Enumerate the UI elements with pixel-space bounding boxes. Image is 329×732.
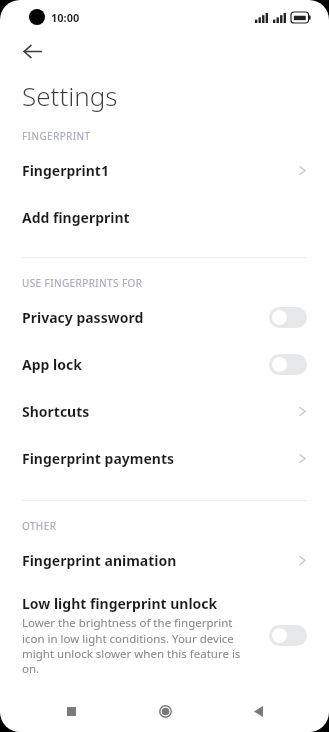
staticText: 10:00 bbox=[51, 10, 80, 25]
staticText: USE FINGERPRINTS FOR bbox=[22, 276, 143, 290]
button[interactable]: Low light fingerprint unlock bbox=[0, 584, 329, 686]
staticText: Add fingerprint bbox=[22, 208, 307, 227]
staticText: Fingerprint1 bbox=[22, 161, 298, 180]
button[interactable]: Toggle bbox=[269, 354, 307, 375]
button[interactable]: Fingerprint animation bbox=[0, 537, 329, 584]
button[interactable]: Fingerprint1 bbox=[0, 147, 329, 194]
staticText: FINGERPRINT bbox=[22, 129, 91, 143]
button[interactable]: Home bbox=[142, 690, 188, 732]
staticText: Lower the brightness of the fingerprint … bbox=[22, 615, 257, 676]
button[interactable]: Toggle bbox=[269, 307, 307, 328]
staticText: Shortcuts bbox=[22, 402, 298, 421]
button[interactable]: Fingerprint payments bbox=[0, 435, 329, 482]
staticText: Privacy password bbox=[22, 308, 269, 327]
button[interactable]: Add fingerprint bbox=[0, 194, 329, 241]
staticText: OTHER bbox=[22, 519, 57, 533]
button[interactable]: Privacy password bbox=[0, 294, 329, 341]
staticText: App lock bbox=[22, 355, 269, 374]
button[interactable]: Shortcuts bbox=[0, 388, 329, 435]
staticText: Fingerprint payments bbox=[22, 449, 298, 468]
staticText: Low light fingerprint unlock bbox=[22, 594, 218, 613]
button[interactable]: Back bbox=[235, 690, 281, 732]
staticText: Settings bbox=[22, 78, 118, 113]
button[interactable]: Back bbox=[14, 34, 50, 68]
button[interactable]: Toggle bbox=[269, 625, 307, 646]
staticText: Fingerprint animation bbox=[22, 551, 298, 570]
button[interactable]: App lock bbox=[0, 341, 329, 388]
button[interactable]: Recents bbox=[48, 690, 94, 732]
